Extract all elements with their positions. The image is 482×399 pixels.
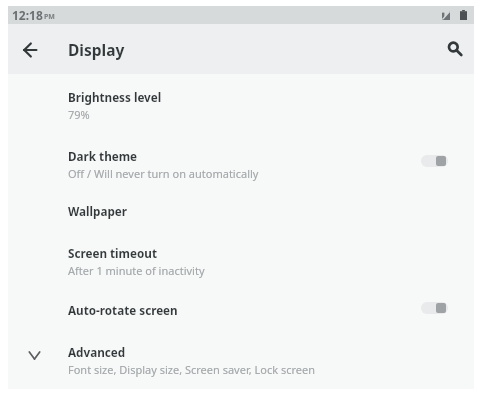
staticText: Dark theme: [68, 148, 138, 164]
button[interactable]: Toggle Dark theme: [421, 150, 448, 172]
staticText: 12:18: [12, 7, 43, 23]
button[interactable]: Wallpaper: [8, 188, 474, 230]
staticText: Brightness level: [68, 89, 162, 105]
staticText: Screen timeout: [68, 245, 157, 261]
staticText: Display: [68, 39, 125, 60]
staticText: 79%: [68, 107, 90, 122]
button[interactable]: Back: [8, 28, 52, 72]
staticText: Font size, Display size, Screen saver, L…: [68, 362, 315, 377]
staticText: Advanced: [68, 344, 126, 360]
staticText: Wallpaper: [68, 203, 128, 219]
staticText: Auto-rotate screen: [68, 302, 178, 318]
button[interactable]: Auto-rotate screen: [8, 287, 474, 329]
staticText: After 1 minute of inactivity: [68, 263, 205, 278]
button[interactable]: Toggle Auto-rotate screen: [421, 297, 448, 319]
button[interactable]: Search: [433, 27, 477, 71]
staticText: PM: [44, 12, 55, 22]
button[interactable]: Screen timeout: [8, 230, 474, 287]
staticText: Off / Will never turn on automatically: [68, 166, 259, 181]
button[interactable]: Dark theme: [8, 133, 474, 188]
button[interactable]: Brightness level: [8, 74, 474, 133]
button[interactable]: Advanced: [8, 329, 474, 389]
